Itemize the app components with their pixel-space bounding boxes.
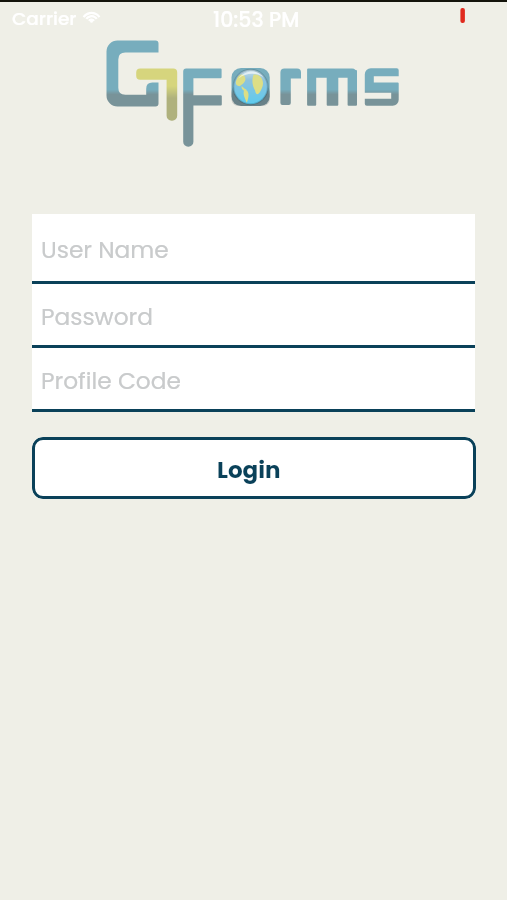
staticText: Login — [217, 454, 281, 486]
button[interactable]: Password — [32, 284, 475, 348]
staticText: Profile Code — [41, 365, 181, 398]
staticText: Password — [41, 301, 154, 334]
button[interactable]: User Name — [32, 214, 475, 284]
staticText: User Name — [41, 234, 169, 267]
staticText: Carrier — [12, 6, 77, 32]
other: Battery — [455, 8, 485, 23]
other: G7Forms logo — [0, 0, 507, 900]
staticText: 10:53 PM — [213, 5, 300, 34]
button[interactable]: Login — [32, 437, 476, 499]
button[interactable]: Profile Code — [32, 348, 475, 412]
other: Wi-Fi signal — [82, 9, 101, 23]
